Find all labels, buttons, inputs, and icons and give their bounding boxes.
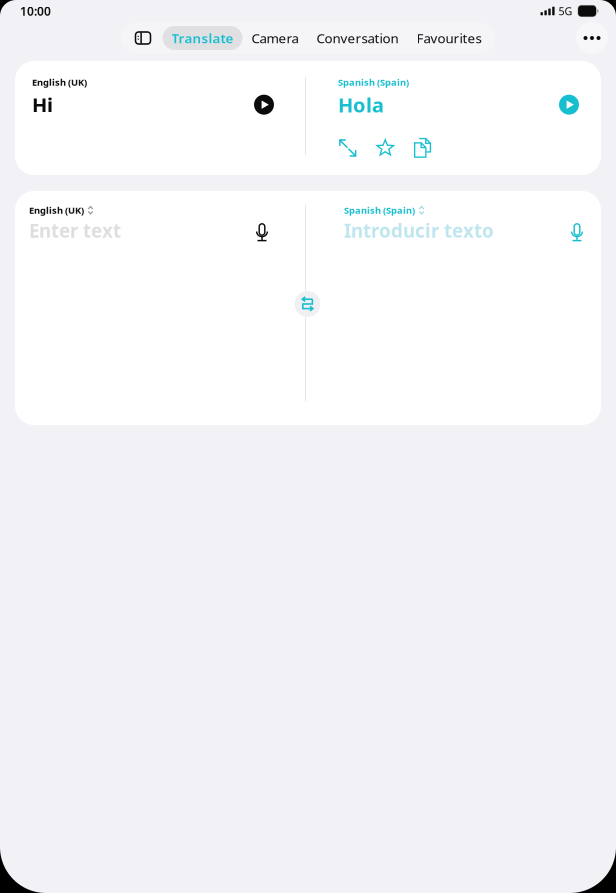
staticText: Hola [338,91,384,118]
button[interactable]: Camera [242,24,307,51]
button[interactable]: Sidebar [122,24,162,51]
button[interactable]: Dictate [249,219,275,245]
button[interactable]: More [576,22,608,54]
button[interactable]: Play translation [556,92,582,118]
staticText: English (UK) [29,204,84,216]
staticText: Hi [32,91,53,118]
button[interactable]: English (UK) [29,204,93,216]
button[interactable]: Spanish (Spain) [344,204,424,216]
button[interactable]: Conversation [307,24,407,51]
staticText: Translate [171,29,233,47]
button[interactable]: Copy [404,136,441,160]
staticText: Camera [251,29,298,47]
staticText: 10:00 [20,3,51,19]
staticText: 5G [559,4,573,18]
staticText: Favourites [416,29,481,47]
staticText: Conversation [316,29,398,47]
staticText: Spanish (Spain) [338,76,409,88]
staticText: Enter text [29,218,121,243]
button[interactable]: Translate [162,24,242,51]
staticText: Spanish (Spain) [344,204,415,216]
button[interactable]: Favourite [366,136,404,160]
button[interactable]: Full screen [329,136,366,160]
button[interactable]: Swap languages [291,288,323,320]
staticText: Introducir texto [344,218,494,243]
button[interactable]: Dictate translation [564,219,590,245]
staticText: English (UK) [32,76,87,88]
button[interactable]: Favourites [407,24,490,51]
button[interactable]: Play source [251,92,277,118]
